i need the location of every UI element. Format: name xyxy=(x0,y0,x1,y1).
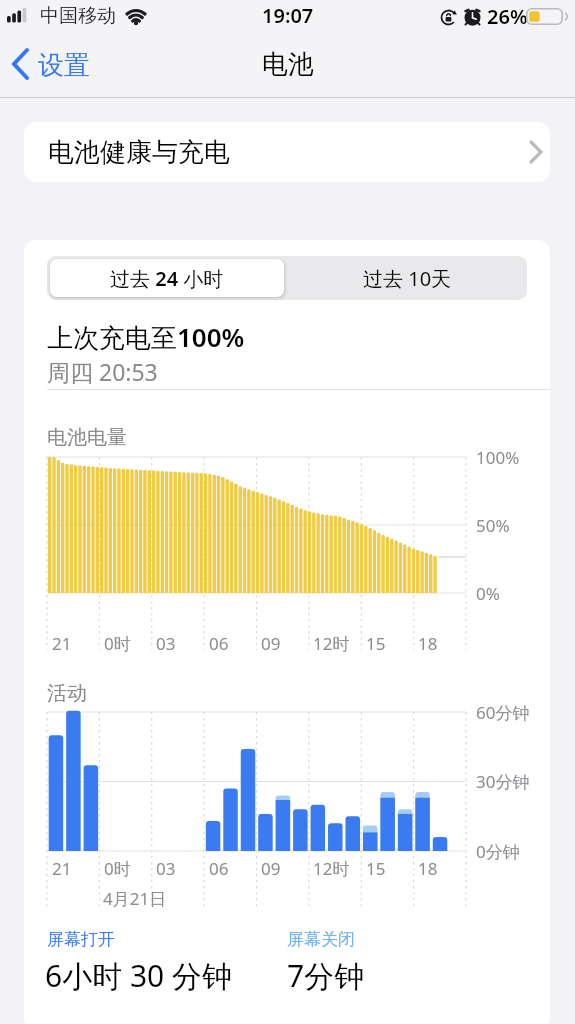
staticText: 0分钟 xyxy=(476,840,520,863)
button[interactable]: 电池健康与充电 xyxy=(24,122,550,182)
staticText: 周四 20:53 xyxy=(47,356,158,387)
staticText: 15 xyxy=(366,632,386,655)
staticText: 设置 xyxy=(38,49,90,82)
staticText: 21 xyxy=(52,632,72,655)
staticText: 100% xyxy=(476,446,520,469)
staticText: 06 xyxy=(209,857,229,880)
staticText: 18 xyxy=(418,632,438,655)
button[interactable]: 设置 xyxy=(8,45,128,85)
staticText: 19:07 xyxy=(262,2,314,29)
staticText: 电池电量 xyxy=(47,425,127,450)
staticText: 过去 24 小时 xyxy=(110,265,224,292)
button[interactable] xyxy=(47,256,287,300)
button[interactable]: 过去 10天 xyxy=(287,256,527,300)
staticText: 26% xyxy=(487,3,528,30)
staticText: 09 xyxy=(261,632,281,655)
staticText: 7分钟 xyxy=(287,955,365,995)
staticText: 03 xyxy=(156,857,176,880)
staticText: 15 xyxy=(366,857,386,880)
staticText: 电池健康与充电 xyxy=(48,136,230,169)
staticText: 电池 xyxy=(262,48,314,81)
staticText: 60分钟 xyxy=(476,701,530,724)
staticText: 屏幕打开 xyxy=(47,929,115,950)
staticText: 过去 10天 xyxy=(363,265,452,292)
staticText: 18 xyxy=(418,857,438,880)
staticText: 06 xyxy=(209,632,229,655)
staticText: 21 xyxy=(52,857,72,880)
staticText: 50% xyxy=(476,514,510,537)
staticText: 0时 xyxy=(104,857,131,880)
staticText: 03 xyxy=(156,632,176,655)
staticText: 12时 xyxy=(313,857,350,880)
staticText: 中国移动 xyxy=(40,4,116,28)
staticText: 4月21日 xyxy=(103,887,167,910)
staticText: 屏幕关闭 xyxy=(287,929,355,950)
staticText: 12时 xyxy=(313,632,350,655)
button[interactable]: 过去 24 小时 xyxy=(50,259,284,297)
staticText: 活动 xyxy=(47,681,87,706)
staticText: 0时 xyxy=(104,632,131,655)
staticText: 6小时 30 分钟 xyxy=(45,955,233,995)
staticText: 上次充电至100% xyxy=(47,319,245,355)
staticText: 09 xyxy=(261,857,281,880)
staticText: 30分钟 xyxy=(476,770,530,793)
staticText: 0% xyxy=(476,582,500,605)
